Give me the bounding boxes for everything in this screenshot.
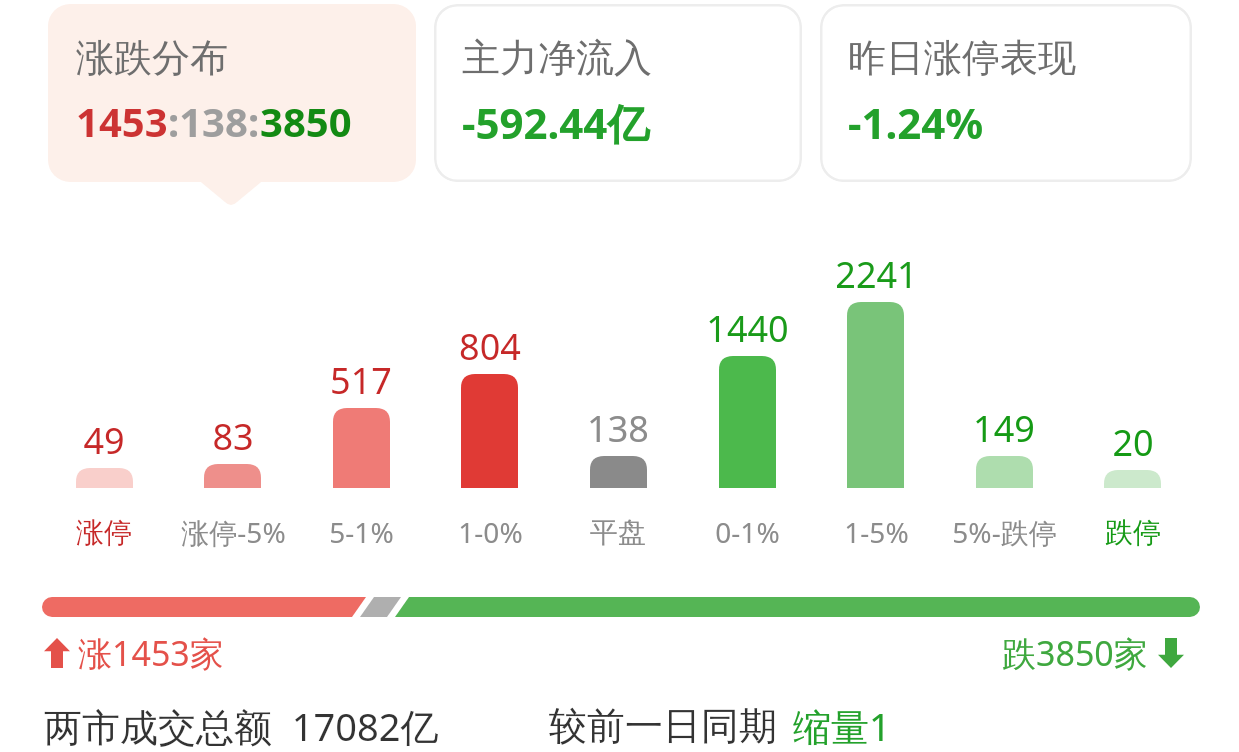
staticText: 83	[212, 412, 254, 460]
staticText: 517	[330, 356, 392, 404]
staticText: 5%-跌停	[952, 513, 1057, 551]
other: Falling	[1156, 636, 1186, 670]
staticText: 804	[459, 322, 521, 370]
staticText: 涨停-5%	[181, 513, 286, 551]
staticText: 5-1%	[329, 513, 394, 551]
other: Rising	[42, 636, 72, 670]
staticText: 0-1%	[715, 513, 780, 551]
button[interactable]: Rising	[40, 628, 226, 678]
staticText: 跌3850家	[1002, 630, 1148, 676]
staticText: 1-5%	[844, 513, 909, 551]
staticText: 49	[83, 416, 125, 464]
staticText: 跌停	[1105, 515, 1161, 550]
staticText: 缩量1	[793, 700, 891, 752]
staticText: 20	[1112, 418, 1154, 466]
staticText: 涨停	[76, 515, 132, 550]
staticText: 两市成交总额 17082亿	[44, 700, 439, 752]
button[interactable]: 跌3850家	[1000, 628, 1188, 678]
staticText: 138	[587, 404, 649, 452]
button[interactable]: 涨跌分布	[48, 4, 416, 182]
staticText: 昨日涨停表现	[848, 34, 1076, 82]
button[interactable]: 主力净流入	[434, 4, 802, 182]
staticText: 主力净流入	[462, 34, 652, 82]
staticText: 1440	[706, 304, 789, 352]
staticText: 较前一日同期	[549, 702, 777, 750]
staticText: :138:	[168, 94, 260, 148]
staticText: 3850	[260, 94, 352, 148]
staticText: 149	[973, 404, 1035, 452]
staticText: 1-0%	[458, 513, 523, 551]
button[interactable]: 昨日涨停表现	[820, 4, 1192, 182]
staticText: 涨1453家	[78, 630, 224, 676]
staticText: 2241	[835, 250, 918, 298]
staticText: -592.44亿	[462, 94, 650, 151]
staticText: -1.24%	[848, 94, 984, 151]
staticText: 平盘	[590, 515, 646, 550]
staticText: 涨跌分布	[76, 34, 228, 82]
staticText: 1453	[76, 94, 168, 148]
